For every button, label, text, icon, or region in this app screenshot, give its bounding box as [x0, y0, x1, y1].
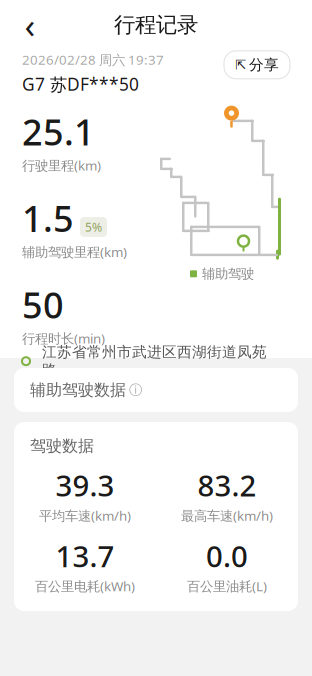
staticText: 39.3 — [55, 466, 114, 505]
staticText: 分享 — [249, 56, 279, 74]
staticText: ⓘ — [129, 382, 142, 398]
staticText: 辅助驾驶数据 — [30, 380, 126, 400]
button[interactable]: ⇱ — [224, 51, 290, 79]
staticText: 江苏省常州市武进区西湖街道长汀路 — [42, 371, 267, 407]
staticText: 1.5 — [22, 194, 74, 242]
staticText: 最高车速(km/h) — [181, 507, 273, 524]
staticText: ‹ — [24, 2, 35, 48]
staticText: 行程时长(min) — [22, 329, 105, 347]
staticText: 13.7 — [55, 536, 114, 575]
staticText: 83.2 — [197, 466, 256, 505]
button[interactable]: 辅助驾驶数据 — [14, 368, 298, 412]
staticText: 25.1 — [22, 108, 95, 155]
button[interactable]: 返回 — [10, 5, 50, 45]
staticText: 0.0 — [206, 536, 248, 575]
staticText: 50 — [22, 281, 64, 328]
staticText: 百公里电耗(kWh) — [35, 577, 135, 595]
staticText: 江苏省常州市武进区西湖街道凤苑路 — [42, 343, 267, 379]
staticText: G7 苏DF***50 — [22, 72, 139, 96]
staticText: 行驶里程(km) — [22, 156, 101, 174]
staticText: 百公里油耗(L) — [187, 577, 267, 595]
staticText: 辅助驾驶里程(km) — [22, 243, 127, 261]
staticText: 平均车速(km/h) — [39, 507, 131, 524]
staticText: 2026/02/28 周六 19:37 — [22, 51, 164, 68]
staticText: 行程记录 — [114, 12, 198, 38]
staticText: ⇱ — [235, 57, 246, 72]
staticText: 驾驶数据 — [30, 436, 94, 456]
staticText: 辅助驾驶 — [202, 266, 254, 282]
staticText: 5% — [85, 219, 102, 235]
